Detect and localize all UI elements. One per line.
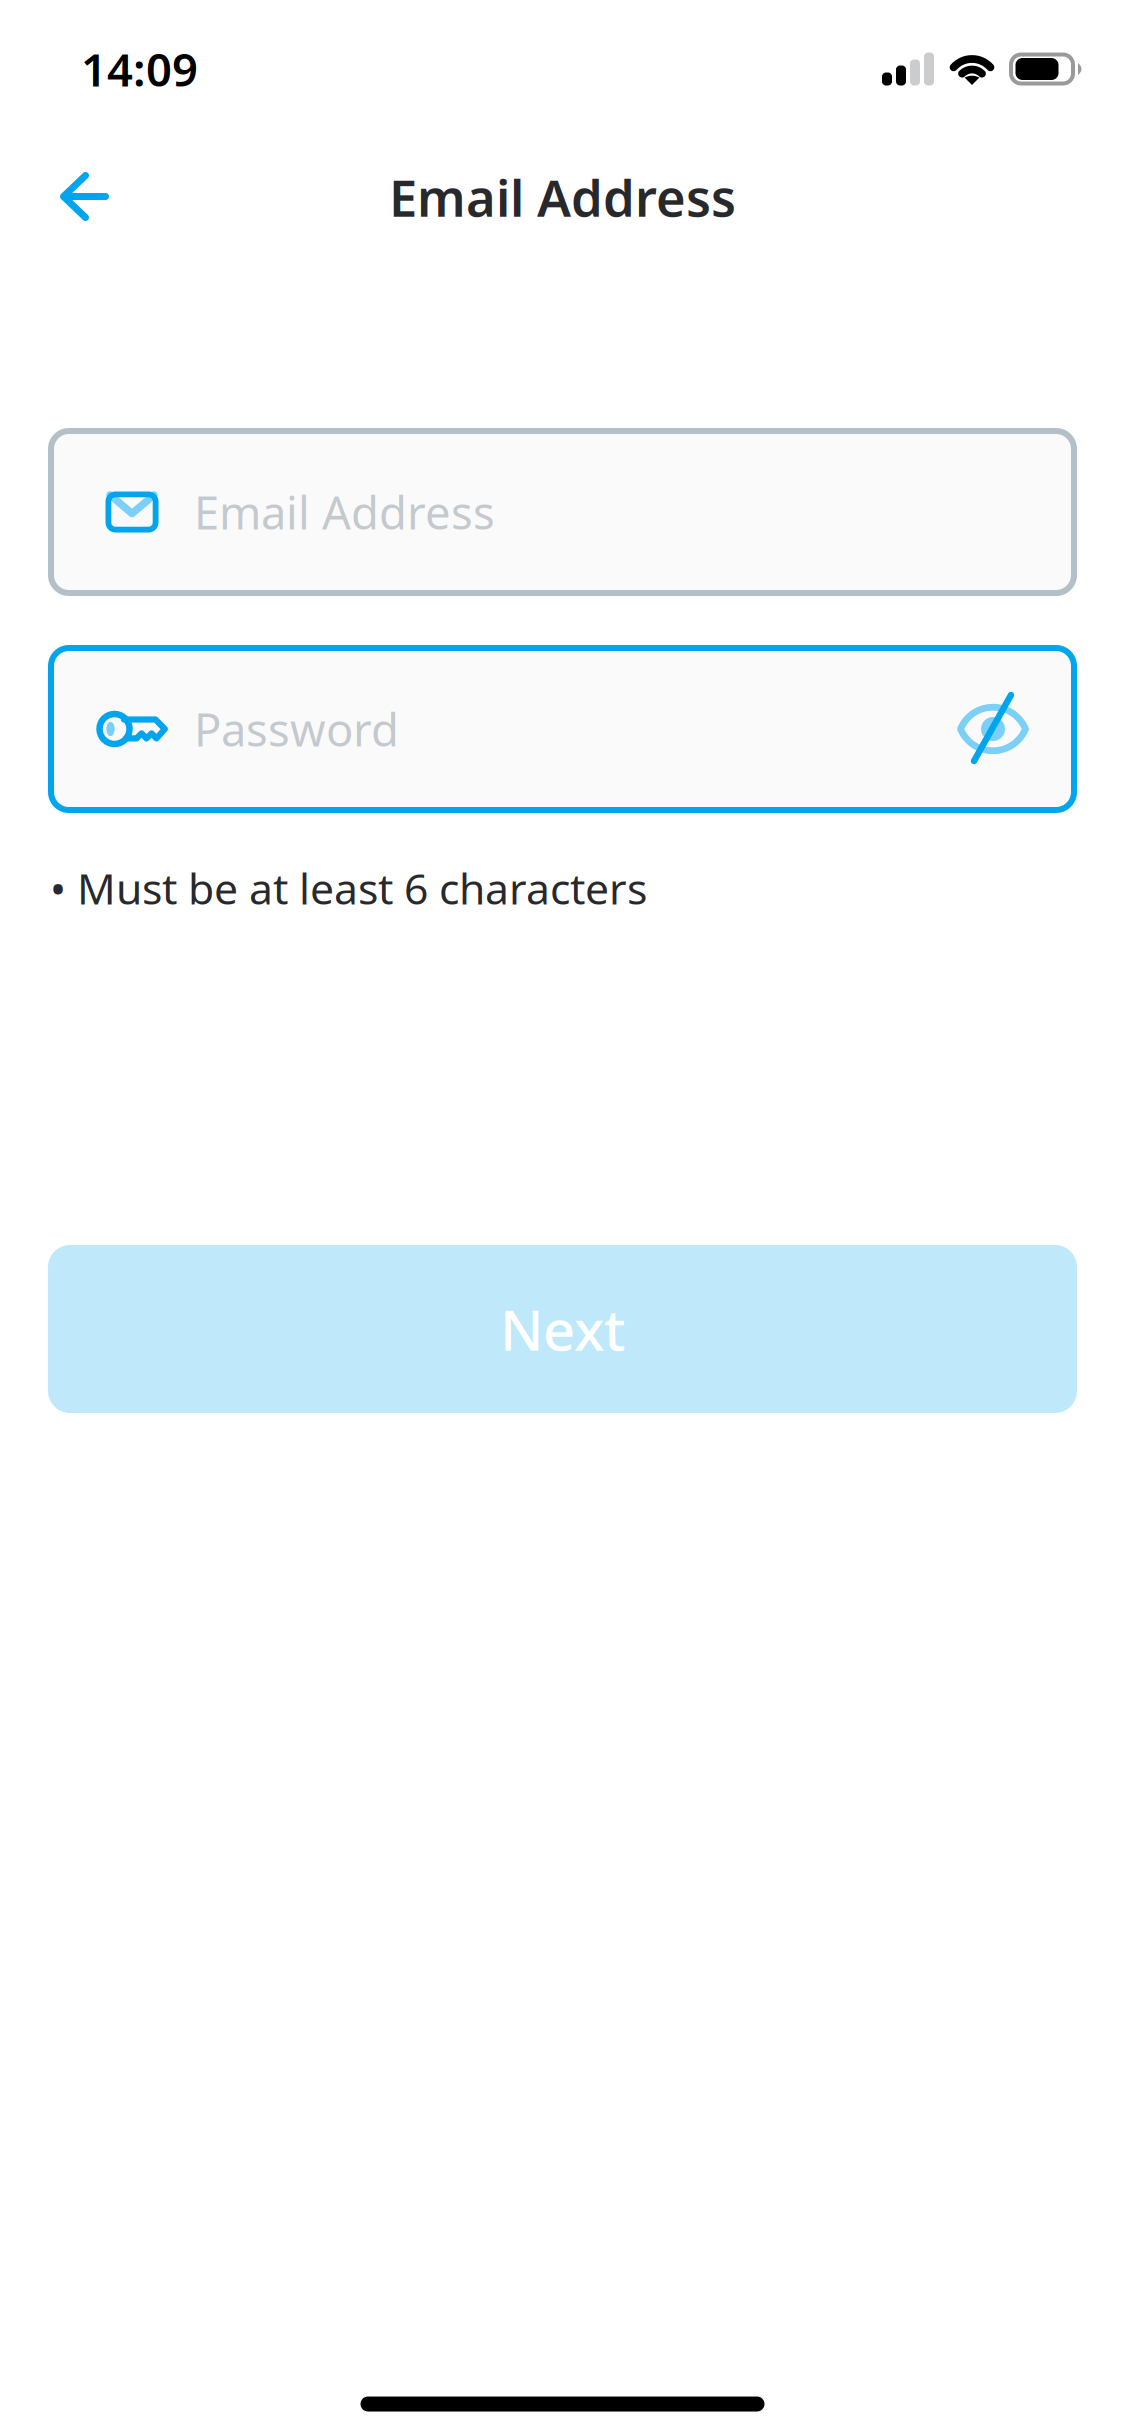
- button[interactable]: Email Address: [48, 428, 1077, 596]
- staticText: Password: [194, 699, 399, 759]
- button[interactable]: Password: [48, 645, 1077, 813]
- staticText: Next: [500, 1292, 625, 1366]
- staticText: Email Address: [194, 482, 495, 542]
- staticText: Email Address: [389, 163, 736, 231]
- button[interactable]: Show password: [941, 677, 1045, 781]
- staticText: 14:09: [81, 39, 198, 99]
- button[interactable]: Next: [48, 1245, 1077, 1413]
- button[interactable]: Back: [32, 144, 137, 249]
- staticText: • Must be at least 6 characters: [50, 860, 647, 916]
